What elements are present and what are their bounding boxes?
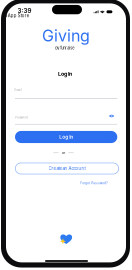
staticText: Log In [58,70,72,77]
staticText: by funraise [55,46,74,50]
staticText: Create an Account [48,166,85,171]
staticText: Forgot Password? [80,181,108,185]
staticText: Email [14,88,22,92]
staticText: Log In [59,134,73,140]
staticText: or [62,151,65,155]
staticText: Giving [42,26,90,45]
button[interactable]: Log In [15,131,117,143]
staticText: App Store [8,13,29,18]
button[interactable]: Forgot Password? [80,181,108,185]
staticText: 3:39 [18,7,32,14]
button[interactable]: Show password [109,114,114,118]
staticText: Password [15,116,28,119]
button[interactable]: Create an Account [15,163,119,174]
